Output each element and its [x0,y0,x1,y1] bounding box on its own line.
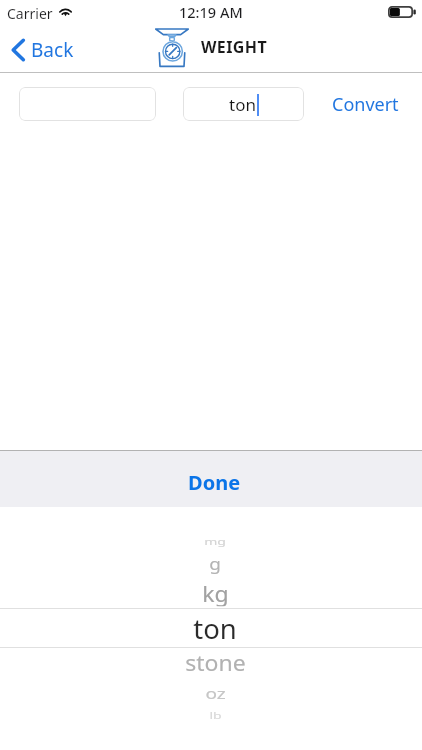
staticText: Carrier [7,4,53,23]
button[interactable]: Value input [19,87,156,121]
staticText: lb [209,710,222,721]
staticText: mg [204,535,226,548]
button[interactable]: g [0,553,422,578]
staticText: oz [205,683,226,703]
staticText: ton [229,93,256,116]
staticText: Done [188,469,241,496]
button[interactable]: oz [0,679,422,705]
button[interactable]: ton [183,87,304,121]
staticText: 12:19 AM [179,2,243,22]
button[interactable]: ton [0,608,422,647]
button[interactable]: kg [0,578,422,608]
staticText: kg [202,578,229,606]
staticText: Convert [332,92,399,117]
staticText: stone [185,648,246,677]
staticText: g [209,553,221,574]
button[interactable]: stone [0,647,422,679]
button[interactable]: Done [172,461,257,504]
staticText: ton [193,610,237,647]
other: Weight scale [155,28,189,67]
button[interactable]: Back [0,31,86,69]
staticText: WEIGHT [201,36,268,58]
staticText: Back [31,37,74,63]
button[interactable]: Convert [330,86,401,123]
